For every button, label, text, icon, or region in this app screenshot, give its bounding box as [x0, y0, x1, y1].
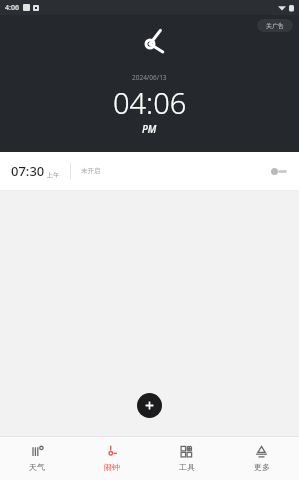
staticText: 更多	[254, 462, 270, 472]
staticText: 2024/06/13	[132, 73, 167, 82]
button[interactable]: Toggle alarm	[270, 166, 288, 176]
staticText: 上午	[47, 171, 59, 179]
button[interactable]: 工具	[149, 436, 224, 480]
staticText: 闹钟	[104, 462, 120, 472]
staticText: 04:06	[113, 83, 187, 122]
button[interactable]: Add alarm	[137, 393, 162, 418]
staticText: 07:30	[11, 162, 45, 180]
button[interactable]: 闹钟	[74, 436, 149, 480]
staticText: 工具	[179, 462, 195, 472]
button[interactable]: 更多	[224, 436, 299, 480]
button[interactable]: 07:30	[0, 152, 299, 190]
staticText: 4:06	[5, 3, 19, 13]
staticText: 关广告	[266, 22, 284, 30]
staticText: PM	[142, 122, 157, 136]
staticText: 未开启	[81, 167, 101, 175]
staticText: 天气	[29, 462, 45, 472]
button[interactable]: 关广告	[257, 19, 293, 32]
button[interactable]: 天气	[0, 436, 74, 480]
